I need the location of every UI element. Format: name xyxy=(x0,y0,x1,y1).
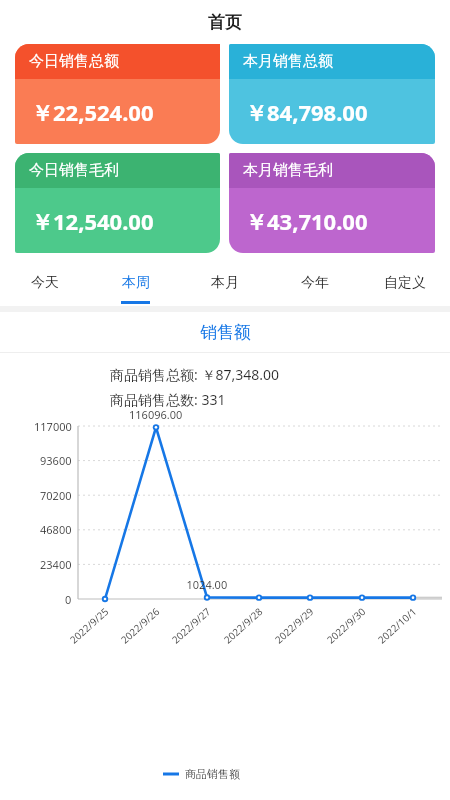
staticText: ￥43,710.00 xyxy=(245,206,368,236)
button[interactable]: 自定义 xyxy=(360,265,450,306)
staticText: ￥12,540.00 xyxy=(31,206,154,236)
staticText: 今年 xyxy=(301,274,329,292)
staticText: 本月销售毛利 xyxy=(243,161,333,180)
button[interactable]: 今日销售总额 xyxy=(15,44,220,144)
staticText: 今天 xyxy=(31,274,59,292)
staticText: 首页 xyxy=(208,12,242,33)
button[interactable]: 本月 xyxy=(180,265,270,306)
staticText: 自定义 xyxy=(384,274,426,292)
button[interactable]: 本月销售毛利 xyxy=(229,153,435,253)
staticText: 本月销售总额 xyxy=(243,52,333,71)
staticText: ￥22,524.00 xyxy=(31,97,154,127)
button[interactable]: 今天 xyxy=(0,265,90,306)
staticText: ￥84,798.00 xyxy=(245,97,368,127)
button[interactable]: 本周 xyxy=(90,265,180,306)
staticText: 商品销售总数: 331 xyxy=(110,390,226,409)
button[interactable]: 今日销售毛利 xyxy=(15,153,220,253)
staticText: 今日销售毛利 xyxy=(29,161,119,180)
staticText: 今日销售总额 xyxy=(29,52,119,71)
staticText: 商品销售总额: ￥87,348.00 xyxy=(110,365,279,384)
staticText: 本周 xyxy=(122,274,150,292)
button[interactable]: 今年 xyxy=(270,265,360,306)
button[interactable]: 本月销售总额 xyxy=(229,44,435,144)
staticText: 销售额 xyxy=(200,322,251,343)
staticText: 本月 xyxy=(211,274,239,292)
